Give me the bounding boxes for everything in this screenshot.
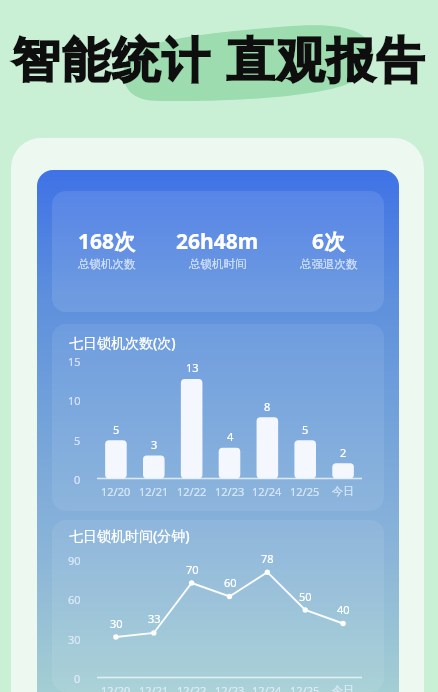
staticText: 0 (74, 472, 81, 487)
button[interactable]: 七日锁机次数(次) (52, 324, 384, 511)
staticText: 智能统计 直观报告 (0, 26, 438, 92)
staticText: 七日锁机次数(次) (69, 333, 176, 352)
staticText: 78 (261, 551, 274, 566)
staticText: 12/21 (139, 683, 169, 692)
staticText: 七日锁机时间(分钟) (69, 526, 190, 545)
staticText: 30 (110, 616, 123, 631)
staticText: 168次 (78, 227, 136, 256)
staticText: 5 (302, 422, 309, 437)
staticText: 70 (186, 562, 199, 577)
staticText: 15 (68, 354, 81, 369)
button[interactable]: 168次 (52, 191, 384, 312)
staticText: 总锁机次数 (78, 257, 136, 271)
staticText: 4 (227, 429, 234, 444)
staticText: 总锁机时间 (189, 257, 247, 271)
staticText: 总强退次数 (300, 257, 358, 271)
staticText: 12/22 (177, 683, 207, 692)
staticText: 12/21 (139, 484, 169, 499)
staticText: 50 (299, 589, 312, 604)
staticText: 0 (74, 671, 81, 686)
staticText: 5 (113, 422, 120, 437)
staticText: 5 (74, 433, 81, 448)
staticText: 60 (68, 592, 81, 607)
staticText: 90 (68, 553, 81, 568)
staticText: 12/24 (252, 683, 282, 692)
staticText: 13 (186, 360, 199, 375)
staticText: 26h48m (176, 227, 259, 256)
staticText: 12/20 (101, 484, 131, 499)
staticText: 40 (337, 602, 350, 617)
staticText: 60 (224, 575, 237, 590)
staticText: 33 (148, 611, 161, 626)
staticText: 12/20 (101, 683, 131, 692)
staticText: 今日 (332, 683, 354, 692)
button[interactable]: 七日锁机时间(分钟) (52, 520, 384, 692)
staticText: 2 (340, 445, 347, 460)
staticText: 12/24 (252, 484, 282, 499)
staticText: 10 (68, 393, 81, 408)
staticText: 8 (264, 399, 271, 414)
staticText: 12/23 (215, 683, 245, 692)
staticText: 今日 (332, 484, 354, 498)
staticText: 12/25 (290, 484, 320, 499)
staticText: 12/23 (215, 484, 245, 499)
staticText: 12/25 (290, 683, 320, 692)
staticText: 6次 (312, 227, 346, 256)
staticText: 3 (151, 437, 158, 452)
staticText: 30 (68, 632, 81, 647)
staticText: 12/22 (177, 484, 207, 499)
